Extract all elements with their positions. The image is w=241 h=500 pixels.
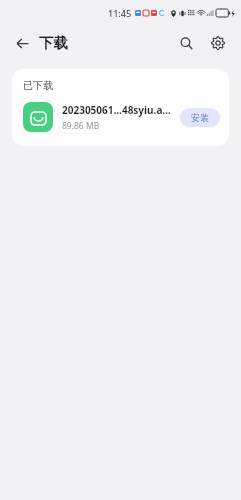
staticText: 下载 bbox=[39, 34, 68, 52]
button[interactable]: 202305061...48syiu.apk bbox=[12, 100, 229, 146]
staticText: 202305061...48syiu.apk bbox=[62, 103, 174, 117]
staticText: 安装 bbox=[191, 112, 209, 123]
staticText: 11:45 bbox=[108, 7, 132, 19]
staticText: 89.86 MB bbox=[62, 120, 100, 132]
button[interactable]: Settings bbox=[205, 30, 231, 56]
button[interactable]: Search bbox=[173, 30, 199, 56]
staticText: 已下载 bbox=[23, 79, 53, 92]
button[interactable]: 安装 bbox=[180, 108, 220, 127]
button[interactable]: Back bbox=[9, 30, 35, 56]
